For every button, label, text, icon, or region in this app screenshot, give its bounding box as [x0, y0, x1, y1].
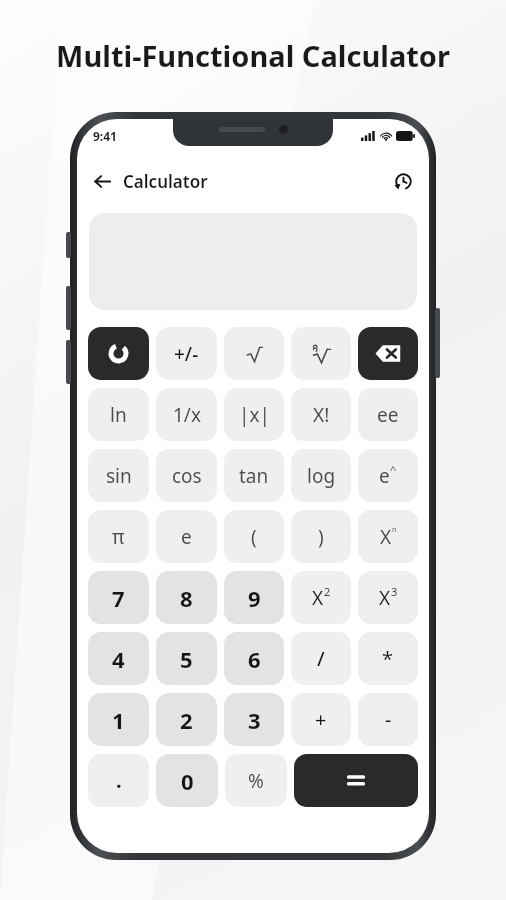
- staticText: X: [379, 585, 391, 611]
- staticText: +: [315, 706, 327, 733]
- staticText: ⁿ: [392, 523, 397, 538]
- staticText: 1/x: [173, 402, 201, 428]
- button[interactable]: ln: [88, 388, 149, 441]
- button[interactable]: 0: [156, 754, 218, 807]
- button[interactable]: 2: [156, 693, 217, 746]
- staticText: Calculator: [123, 170, 208, 193]
- button[interactable]: +/-: [156, 327, 217, 380]
- staticText: 0: [181, 766, 194, 796]
- staticText: +/-: [174, 341, 199, 367]
- button[interactable]: X: [358, 510, 418, 563]
- staticText: |x|: [239, 402, 270, 428]
- button[interactable]: e: [358, 449, 418, 502]
- staticText: tan: [239, 463, 269, 489]
- button[interactable]: X!: [291, 388, 351, 441]
- staticText: e: [181, 524, 192, 550]
- button[interactable]: Backspace: [358, 327, 418, 380]
- staticText: 3: [391, 584, 398, 599]
- staticText: 9: [248, 583, 261, 613]
- button[interactable]: Equals: [294, 754, 418, 807]
- staticText: 2: [180, 705, 193, 735]
- staticText: X: [380, 524, 392, 550]
- button[interactable]: π: [88, 510, 149, 563]
- staticText: X!: [313, 402, 330, 428]
- staticText: X: [312, 585, 324, 611]
- button[interactable]: 4: [88, 632, 149, 685]
- button[interactable]: Back: [85, 164, 119, 198]
- button[interactable]: %: [225, 754, 287, 807]
- staticText: /: [317, 645, 325, 672]
- button[interactable]: e: [156, 510, 217, 563]
- button[interactable]: [291, 327, 351, 380]
- staticText: 3: [248, 705, 261, 735]
- button[interactable]: 5: [156, 632, 217, 685]
- button[interactable]: 6: [224, 632, 284, 685]
- staticText: 2: [324, 584, 331, 599]
- button[interactable]: *: [358, 632, 418, 685]
- button[interactable]: cos: [156, 449, 217, 502]
- staticText: ln: [110, 402, 127, 428]
- staticText: -: [385, 706, 392, 733]
- button[interactable]: 1: [88, 693, 149, 746]
- staticText: 7: [112, 583, 125, 613]
- staticText: 8: [180, 583, 193, 613]
- staticText: %: [248, 768, 264, 794]
- staticText: cos: [172, 463, 202, 489]
- button[interactable]: 8: [156, 571, 217, 624]
- button[interactable]: .: [88, 754, 149, 807]
- button[interactable]: 3: [224, 693, 284, 746]
- button[interactable]: -: [358, 693, 418, 746]
- button[interactable]: X: [291, 571, 351, 624]
- staticText: ee: [377, 402, 399, 428]
- button[interactable]: |x|: [224, 388, 284, 441]
- staticText: 6: [248, 644, 261, 674]
- staticText: sin: [106, 463, 132, 489]
- staticText: *: [382, 645, 394, 672]
- button[interactable]: ): [291, 510, 351, 563]
- staticText: π: [112, 524, 125, 550]
- button[interactable]: +: [291, 693, 351, 746]
- button[interactable]: [88, 327, 149, 380]
- button[interactable]: [224, 327, 284, 380]
- button[interactable]: 1/x: [156, 388, 217, 441]
- button[interactable]: (: [224, 510, 284, 563]
- staticText: ^: [390, 462, 397, 477]
- button[interactable]: ee: [358, 388, 418, 441]
- staticText: log: [307, 463, 336, 489]
- staticText: .: [116, 767, 122, 794]
- button[interactable]: /: [291, 632, 351, 685]
- staticText: e: [379, 463, 390, 489]
- button[interactable]: 9: [224, 571, 284, 624]
- button[interactable]: log: [291, 449, 351, 502]
- button[interactable]: X: [358, 571, 418, 624]
- button[interactable]: tan: [224, 449, 284, 502]
- staticText: ): [318, 524, 324, 550]
- button[interactable]: History: [387, 165, 419, 197]
- staticText: (: [251, 524, 257, 550]
- staticText: 5: [180, 644, 193, 674]
- staticText: 4: [112, 644, 125, 674]
- staticText: 1: [112, 705, 125, 735]
- button[interactable]: 7: [88, 571, 149, 624]
- button[interactable]: sin: [88, 449, 149, 502]
- staticText: 9:41: [93, 128, 117, 144]
- staticText: Multi-Functional Calculator: [0, 36, 506, 75]
